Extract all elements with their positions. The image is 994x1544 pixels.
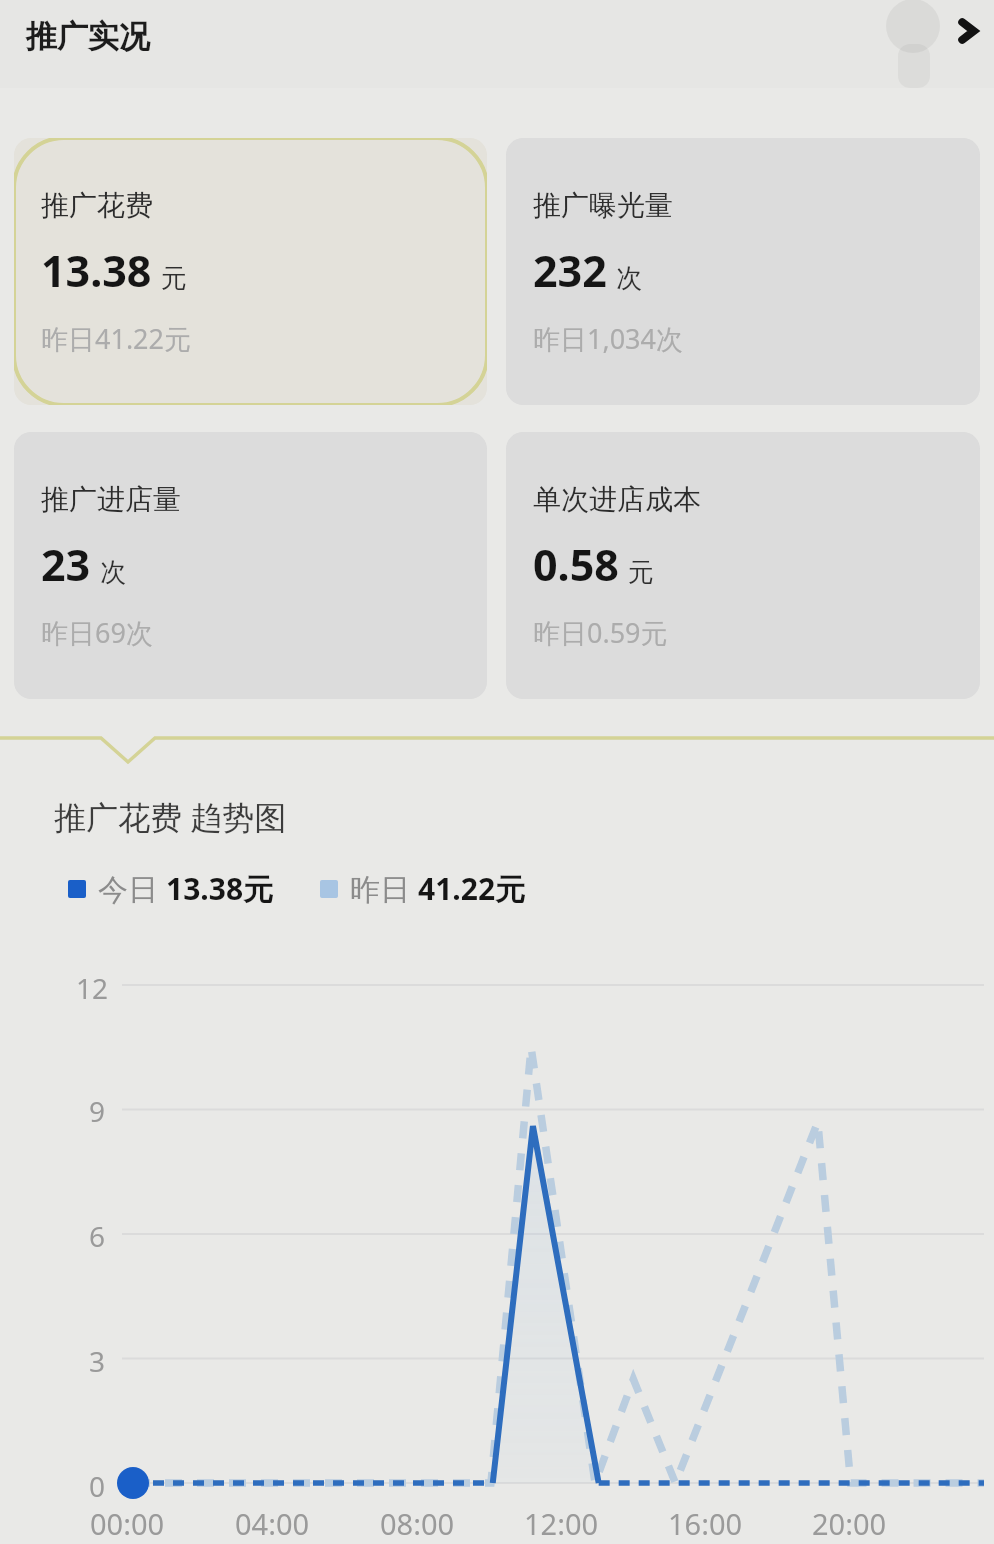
staticText: 次 [616, 262, 642, 295]
staticText: 推广进店量 [41, 482, 181, 517]
staticText: 元 [161, 262, 187, 295]
staticText: 昨日0.59元 [533, 614, 668, 651]
button[interactable]: 查看更多 [944, 8, 990, 54]
staticText: 16:00 [668, 1504, 743, 1543]
button[interactable]: 推广花费 [14, 138, 487, 405]
staticText: 3 [89, 1342, 106, 1380]
button[interactable]: 单次进店成本 [506, 432, 980, 699]
staticText: 元 [628, 556, 654, 589]
staticText: 41.22元 [418, 868, 526, 909]
staticText: 00:00 [90, 1504, 165, 1543]
staticText: 昨日 [350, 868, 418, 909]
staticText: 23 [41, 535, 91, 594]
staticText: 昨日1,034次 [533, 320, 684, 357]
button[interactable]: 推广曝光量 [506, 138, 980, 405]
staticText: 今日 [98, 868, 166, 909]
staticText: 13.38元 [166, 868, 274, 909]
staticText: 6 [89, 1217, 106, 1255]
staticText: 推广实况 [26, 17, 150, 56]
staticText: 推广花费 趋势图 [54, 795, 287, 839]
staticText: 20:00 [812, 1504, 887, 1543]
staticText: 12:00 [524, 1504, 599, 1543]
staticText: 昨日69次 [41, 614, 153, 651]
staticText: 9 [89, 1092, 106, 1130]
staticText: 0.58 [533, 535, 619, 594]
staticText: 0 [89, 1467, 106, 1505]
staticText: 04:00 [235, 1504, 310, 1543]
staticText: 次 [100, 556, 126, 589]
staticText: 推广曝光量 [533, 188, 673, 223]
staticText: 12 [76, 969, 109, 1007]
staticText: 推广花费 [41, 188, 153, 223]
staticText: 13.38 [41, 241, 152, 300]
staticText: 232 [533, 241, 607, 300]
button[interactable]: 推广进店量 [14, 432, 487, 699]
staticText: 08:00 [380, 1504, 455, 1543]
staticText: 昨日41.22元 [41, 320, 192, 357]
staticText: 单次进店成本 [533, 482, 701, 517]
